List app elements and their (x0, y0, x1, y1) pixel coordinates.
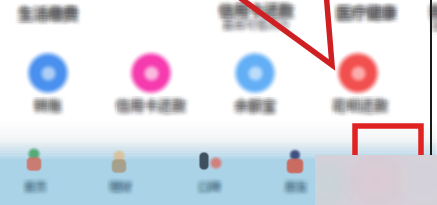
staticText: 我的快递 (429, 1, 437, 23)
staticText: 最高可借20万 (225, 13, 292, 30)
staticText: 信用卡还款 (217, 0, 292, 17)
staticText: 我的快递 (426, 0, 437, 18)
staticText: 花呗还款 (336, 92, 392, 112)
staticText: 朋友 (286, 179, 308, 195)
staticText: 最高可借20万 (220, 17, 287, 33)
staticText: 余额宝 (237, 91, 279, 111)
staticText: 生活缴费 (21, 5, 81, 27)
staticText: 生活缴费 (15, 6, 75, 28)
staticText: 我的快递 (429, 0, 437, 18)
staticText: 医疗健康 (332, 0, 392, 22)
staticText: 首页 (28, 177, 50, 193)
staticText: 理财 (105, 180, 127, 197)
staticText: 查看物流 (427, 14, 437, 31)
staticText: 余额宝 (235, 98, 277, 118)
staticText: 余额宝 (238, 92, 280, 112)
staticText: 理财 (107, 177, 129, 193)
button[interactable]: 信用卡还款 (0, 0, 437, 205)
staticText: 最高可借20万 (220, 14, 287, 31)
staticText: 转账 (35, 96, 63, 116)
button[interactable] (0, 0, 437, 205)
staticText: 信用卡还款 (112, 96, 182, 116)
button[interactable] (0, 0, 437, 205)
staticText: 最高可借20万 (225, 16, 292, 32)
button[interactable]: 医疗健康 (0, 0, 437, 205)
staticText: 转账 (31, 96, 59, 116)
staticText: 查看物流 (430, 18, 437, 34)
staticText: 我的快递 (430, 0, 437, 18)
staticText: 口碑 (202, 181, 224, 198)
staticText: 余额宝 (235, 95, 277, 115)
staticText: 我的快递 (432, 1, 437, 23)
staticText: 信用卡还款 (221, 0, 296, 21)
staticText: 口碑 (200, 179, 222, 195)
staticText: 查看物流 (433, 13, 437, 29)
staticText: 信用卡还款 (116, 91, 186, 111)
staticText: 转账 (34, 92, 62, 112)
staticText: 转账 (35, 99, 63, 119)
staticText: 查看物流 (435, 19, 437, 36)
staticText: 花呗还款 (331, 92, 387, 112)
button[interactable]: 生活缴费 (0, 0, 437, 205)
staticText: 口碑 (202, 179, 224, 195)
staticText: 医疗健康 (333, 2, 393, 24)
staticText: 查看物流 (433, 18, 437, 34)
staticText: 信用卡还款 (216, 0, 291, 18)
staticText: 最高可借20万 (224, 17, 291, 33)
button[interactable]: 首页 (0, 0, 437, 205)
staticText: 余额宝 (231, 98, 273, 118)
staticText: 信用卡还款 (117, 91, 187, 111)
staticText: 我的快递 (430, 1, 437, 23)
staticText: 生活缴费 (17, 5, 77, 27)
staticText: 查看物流 (430, 20, 437, 37)
staticText: 首页 (20, 180, 42, 197)
staticText: 查看物流 (431, 15, 437, 32)
staticText: 转账 (37, 95, 65, 115)
staticText: 信用卡还款 (214, 2, 289, 24)
staticText: 口碑 (197, 177, 219, 193)
staticText: 信用卡还款 (117, 98, 187, 118)
staticText: 朋友 (283, 177, 305, 193)
button[interactable] (0, 0, 437, 205)
staticText: 口碑 (194, 179, 216, 195)
staticText: 医疗健康 (339, 0, 399, 19)
button[interactable]: 我的快递 (0, 0, 437, 205)
staticText: 口碑 (198, 179, 220, 195)
staticText: 理财 (111, 179, 133, 195)
staticText: 理财 (105, 174, 127, 191)
staticText: 我的快递 (426, 1, 437, 23)
staticText: 医疗健康 (335, 0, 395, 19)
button[interactable] (0, 0, 437, 205)
staticText: 信用卡还款 (220, 0, 295, 17)
staticText: 首页 (23, 179, 45, 195)
staticText: 转账 (31, 95, 59, 115)
staticText: 信用卡还款 (218, 0, 293, 22)
staticText: 花呗还款 (331, 95, 387, 115)
staticText: 转账 (33, 93, 61, 114)
staticText: 信用卡还款 (120, 98, 190, 118)
staticText: 查看物流 (432, 18, 437, 34)
staticText: 朋友 (283, 175, 305, 192)
staticText: 朋友 (284, 180, 306, 197)
staticText: 医疗健康 (336, 1, 396, 23)
staticText: 我的快递 (426, 0, 437, 21)
button[interactable]: 理财 (0, 0, 437, 205)
staticText: 查看物流 (427, 15, 437, 32)
staticText: 医疗健康 (340, 0, 400, 19)
staticText: 信用卡还款 (217, 2, 292, 24)
staticText: 转账 (31, 93, 59, 114)
button[interactable]: 朋友 (0, 0, 437, 205)
staticText: 最高可借20万 (222, 17, 289, 33)
staticText: 医疗健康 (339, 5, 399, 27)
staticText: 信用卡还款 (216, 2, 291, 24)
staticText: 朋友 (285, 175, 307, 192)
staticText: 信用卡还款 (120, 91, 190, 111)
staticText: 口碑 (199, 181, 221, 198)
staticText: 我的快递 (426, 3, 437, 25)
staticText: 首页 (20, 177, 42, 193)
staticText: 余额宝 (230, 95, 272, 115)
staticText: 朋友 (281, 179, 303, 195)
staticText: 余额宝 (235, 91, 277, 111)
staticText: 花呗还款 (336, 99, 392, 119)
button[interactable]: 口碑 (0, 0, 437, 205)
